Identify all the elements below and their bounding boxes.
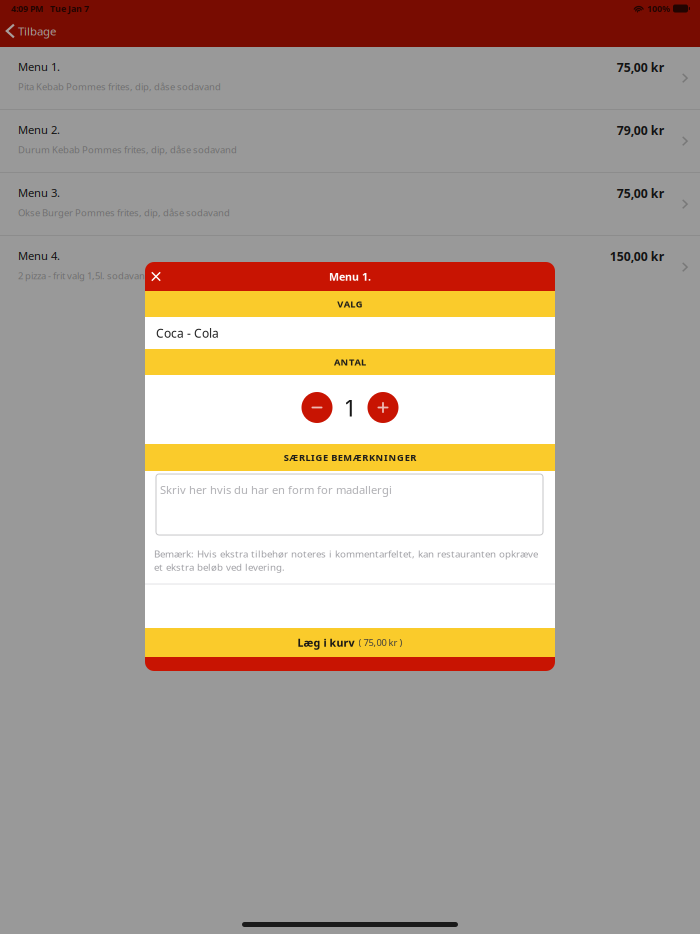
button[interactable]: Menu 1. xyxy=(0,47,700,109)
staticText: Menu 1. xyxy=(18,59,60,74)
staticText: 75,00 kr xyxy=(617,185,664,202)
staticText: Menu 3. xyxy=(18,185,60,200)
staticText: Pita Kebab Pommes frites, dip, dåse soda… xyxy=(18,80,221,93)
button[interactable]: Læg i kurv xyxy=(145,628,555,657)
staticText: ( 75,00 kr ) xyxy=(358,636,402,649)
button[interactable]: Special remarks xyxy=(145,474,555,535)
staticText: 150,00 kr xyxy=(610,248,664,265)
staticText: Okse Burger Pommes frites, dip, dåse sod… xyxy=(18,206,230,219)
staticText: ANTAL xyxy=(334,356,366,368)
staticText: Skriv her hvis du har en form for madall… xyxy=(160,482,392,497)
button[interactable]: Menu 4. xyxy=(0,236,700,298)
staticText: 75,00 kr xyxy=(617,59,664,76)
staticText: 2 pizza - frit valg 1,5l. sodavand xyxy=(18,269,151,282)
staticText: Tue Jan 7 xyxy=(50,2,89,14)
button[interactable]: Decrease quantity xyxy=(301,392,332,423)
staticText: Bemærk: Hvis ekstra tilbehør noteres i k… xyxy=(154,547,538,573)
staticText: VALG xyxy=(337,298,363,310)
button[interactable]: Menu 2. xyxy=(0,110,700,172)
button[interactable]: Tilbage xyxy=(0,19,66,43)
staticText: 4:09 PM xyxy=(11,2,43,14)
button[interactable]: Close xyxy=(145,263,167,289)
staticText: Menu 4. xyxy=(18,248,60,263)
staticText: 100% xyxy=(647,2,670,14)
button[interactable]: Menu 3. xyxy=(0,173,700,235)
staticText: Coca - Cola xyxy=(156,325,219,341)
staticText: Durum Kebab Pommes frites, dip, dåse sod… xyxy=(18,143,237,156)
staticText: SÆRLIGE BEMÆRKNINGER xyxy=(284,451,416,464)
staticText: Menu 1. xyxy=(329,269,371,284)
staticText: Menu 2. xyxy=(18,122,60,137)
staticText: Tilbage xyxy=(18,23,56,39)
staticText: 79,00 kr xyxy=(617,122,664,139)
button[interactable]: Increase quantity xyxy=(367,392,398,423)
staticText: Læg i kurv xyxy=(297,635,354,650)
staticText: 1 xyxy=(343,392,356,423)
